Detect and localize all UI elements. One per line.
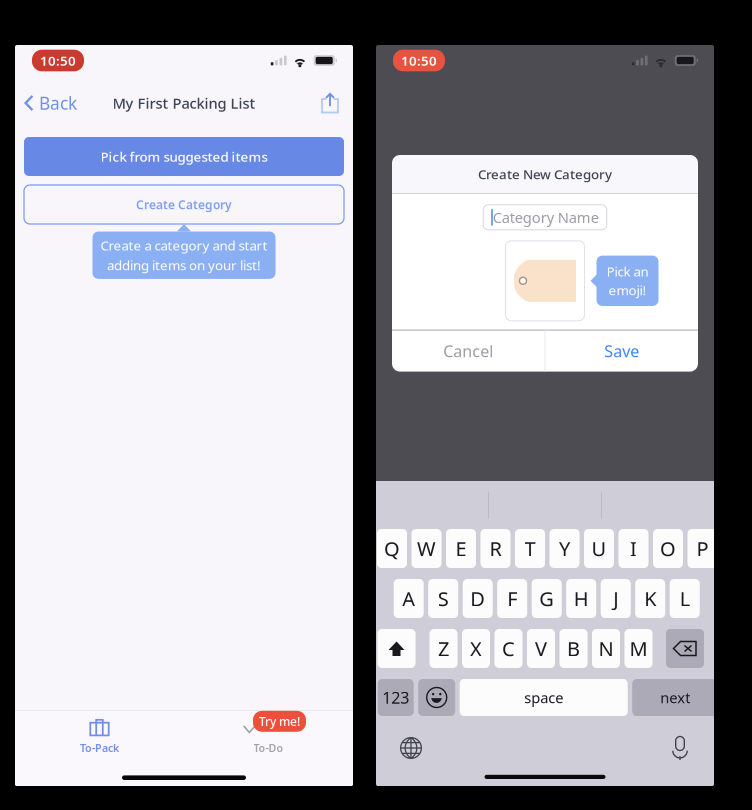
staticText: W — [417, 535, 436, 562]
button[interactable]: Y — [549, 529, 579, 568]
button[interactable]: Emoji — [418, 679, 455, 716]
button[interactable]: Z — [429, 629, 457, 668]
staticText: Save — [604, 340, 639, 362]
staticText: Try me! — [259, 713, 300, 729]
staticText: S — [438, 585, 449, 612]
staticText: H — [574, 585, 589, 612]
staticText: Back — [39, 91, 77, 114]
staticText: L — [680, 585, 690, 612]
button[interactable]: R — [480, 529, 510, 568]
button[interactable]: G — [532, 579, 562, 618]
button[interactable]: Cancel — [392, 331, 545, 372]
button[interactable]: A — [394, 579, 424, 618]
button[interactable]: Delete — [666, 629, 704, 668]
button[interactable]: Pick from suggested items — [24, 137, 344, 176]
button[interactable]: I — [618, 529, 648, 568]
button[interactable]: Share — [313, 89, 353, 116]
staticText: To-Pack — [80, 741, 119, 755]
staticText: Pick from suggested items — [100, 148, 267, 165]
staticText: Create New Category — [478, 165, 612, 183]
button[interactable]: E — [446, 529, 476, 568]
button[interactable]: space — [460, 679, 628, 716]
staticText: next — [660, 688, 690, 707]
staticText: T — [524, 535, 535, 562]
button[interactable]: T — [515, 529, 545, 568]
staticText: P — [696, 535, 708, 562]
button[interactable]: S — [428, 579, 458, 618]
button[interactable]: H — [566, 579, 596, 618]
staticText: emoji! — [608, 281, 646, 299]
button[interactable]: Create Category — [24, 185, 344, 224]
staticText: R — [489, 535, 501, 562]
staticText: 123 — [382, 687, 409, 708]
staticText: V — [535, 635, 547, 662]
staticText: G — [539, 585, 554, 612]
staticText: Z — [438, 635, 449, 662]
staticText: C — [502, 635, 515, 662]
staticText: N — [598, 635, 613, 662]
staticText: 10:50 — [40, 52, 76, 69]
button[interactable]: Try me! — [184, 711, 353, 759]
staticText: My First Packing List — [112, 93, 255, 113]
button[interactable]: M — [624, 629, 652, 668]
button[interactable]: X — [462, 629, 490, 668]
button[interactable]: B — [559, 629, 587, 668]
button[interactable]: N — [592, 629, 620, 668]
button[interactable]: Dictate — [662, 730, 698, 766]
staticText: A — [402, 585, 415, 612]
button[interactable]: W — [411, 529, 441, 568]
staticText: D — [470, 585, 485, 612]
staticText: O — [660, 535, 676, 562]
staticText: B — [567, 635, 580, 662]
button[interactable]: O — [653, 529, 683, 568]
staticText: space — [524, 688, 563, 707]
button[interactable]: To-Pack — [15, 711, 184, 759]
button[interactable]: Next keyboard — [393, 730, 429, 766]
button[interactable]: J — [601, 579, 631, 618]
staticText: Y — [559, 535, 570, 562]
button[interactable]: V — [527, 629, 555, 668]
staticText: M — [629, 635, 647, 662]
staticText: X — [470, 635, 482, 662]
button[interactable]: K — [635, 579, 665, 618]
button[interactable]: U — [584, 529, 614, 568]
staticText: Create a category and start — [100, 236, 267, 254]
button[interactable]: Q — [377, 529, 407, 568]
staticText: Pick an — [606, 263, 648, 280]
staticText: Category Name — [493, 208, 599, 227]
staticText: Q — [384, 535, 400, 562]
button[interactable]: Back — [15, 85, 83, 120]
button[interactable]: Save — [545, 331, 698, 372]
staticText: Cancel — [443, 340, 493, 362]
staticText: I — [630, 535, 637, 562]
button[interactable]: 123 — [378, 679, 414, 716]
button[interactable]: F — [497, 579, 527, 618]
button[interactable]: Shift — [377, 629, 415, 668]
button[interactable]: next — [632, 679, 718, 716]
button[interactable]: D — [463, 579, 493, 618]
staticText: adding items on your list! — [107, 256, 261, 274]
button[interactable]: C — [494, 629, 522, 668]
staticText: F — [507, 585, 517, 612]
staticText: U — [591, 535, 606, 562]
staticText: E — [455, 535, 466, 562]
staticText: Create Category — [136, 196, 232, 212]
button[interactable]: L — [670, 579, 700, 618]
staticText: To-Do — [253, 741, 283, 755]
staticText: J — [613, 585, 618, 612]
staticText: 10:50 — [401, 52, 437, 69]
staticText: K — [644, 585, 656, 612]
button[interactable]: P — [687, 529, 717, 568]
